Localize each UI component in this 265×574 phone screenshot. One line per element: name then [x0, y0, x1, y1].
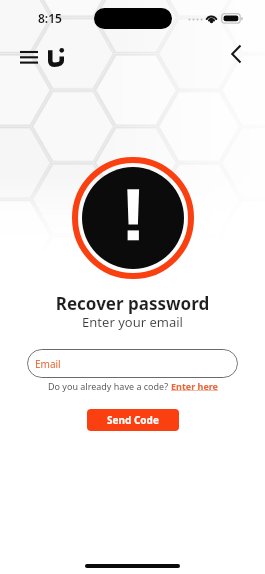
- staticText: Email: [35, 357, 61, 371]
- button[interactable]: Email: [27, 349, 238, 378]
- button[interactable]: Enter here: [171, 380, 218, 392]
- staticText: Send Code: [107, 413, 159, 427]
- staticText: Do you already have a code?: [48, 380, 171, 392]
- button[interactable]: Back: [224, 42, 248, 66]
- staticText: 8:15: [38, 10, 62, 26]
- button[interactable]: Menu: [20, 46, 64, 68]
- staticText: Enter your email: [0, 313, 265, 331]
- staticText: Recover password: [0, 292, 265, 315]
- button[interactable]: Send Code: [87, 409, 179, 431]
